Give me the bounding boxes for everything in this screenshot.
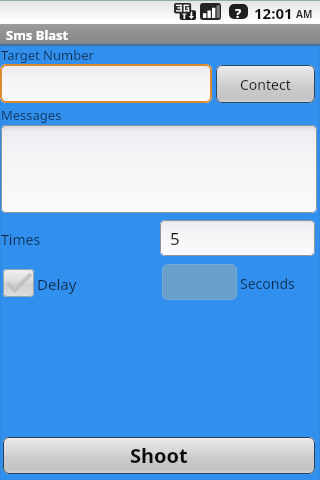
button[interactable]: Shoot (3, 437, 315, 474)
button[interactable]: Seconds input (162, 264, 237, 300)
button[interactable]: Delay checkbox (3, 269, 34, 297)
staticText: Seconds (240, 274, 295, 293)
staticText: Target Number (1, 46, 94, 64)
staticText: Shoot (130, 442, 188, 469)
button[interactable]: Target number input (0, 64, 212, 103)
staticText: 12:01 (254, 3, 293, 23)
staticText: Contect (240, 75, 291, 94)
staticText: 5 (170, 227, 180, 250)
staticText: Sms Blast (6, 26, 69, 44)
staticText: ? (235, 4, 242, 19)
staticText: AM (296, 7, 313, 21)
button[interactable]: Messages input (1, 125, 317, 213)
button[interactable]: Contect (216, 65, 315, 103)
staticText: Messages (1, 106, 62, 124)
button[interactable]: 5 (160, 220, 315, 256)
staticText: Times (1, 230, 41, 249)
staticText: Delay (37, 274, 77, 294)
